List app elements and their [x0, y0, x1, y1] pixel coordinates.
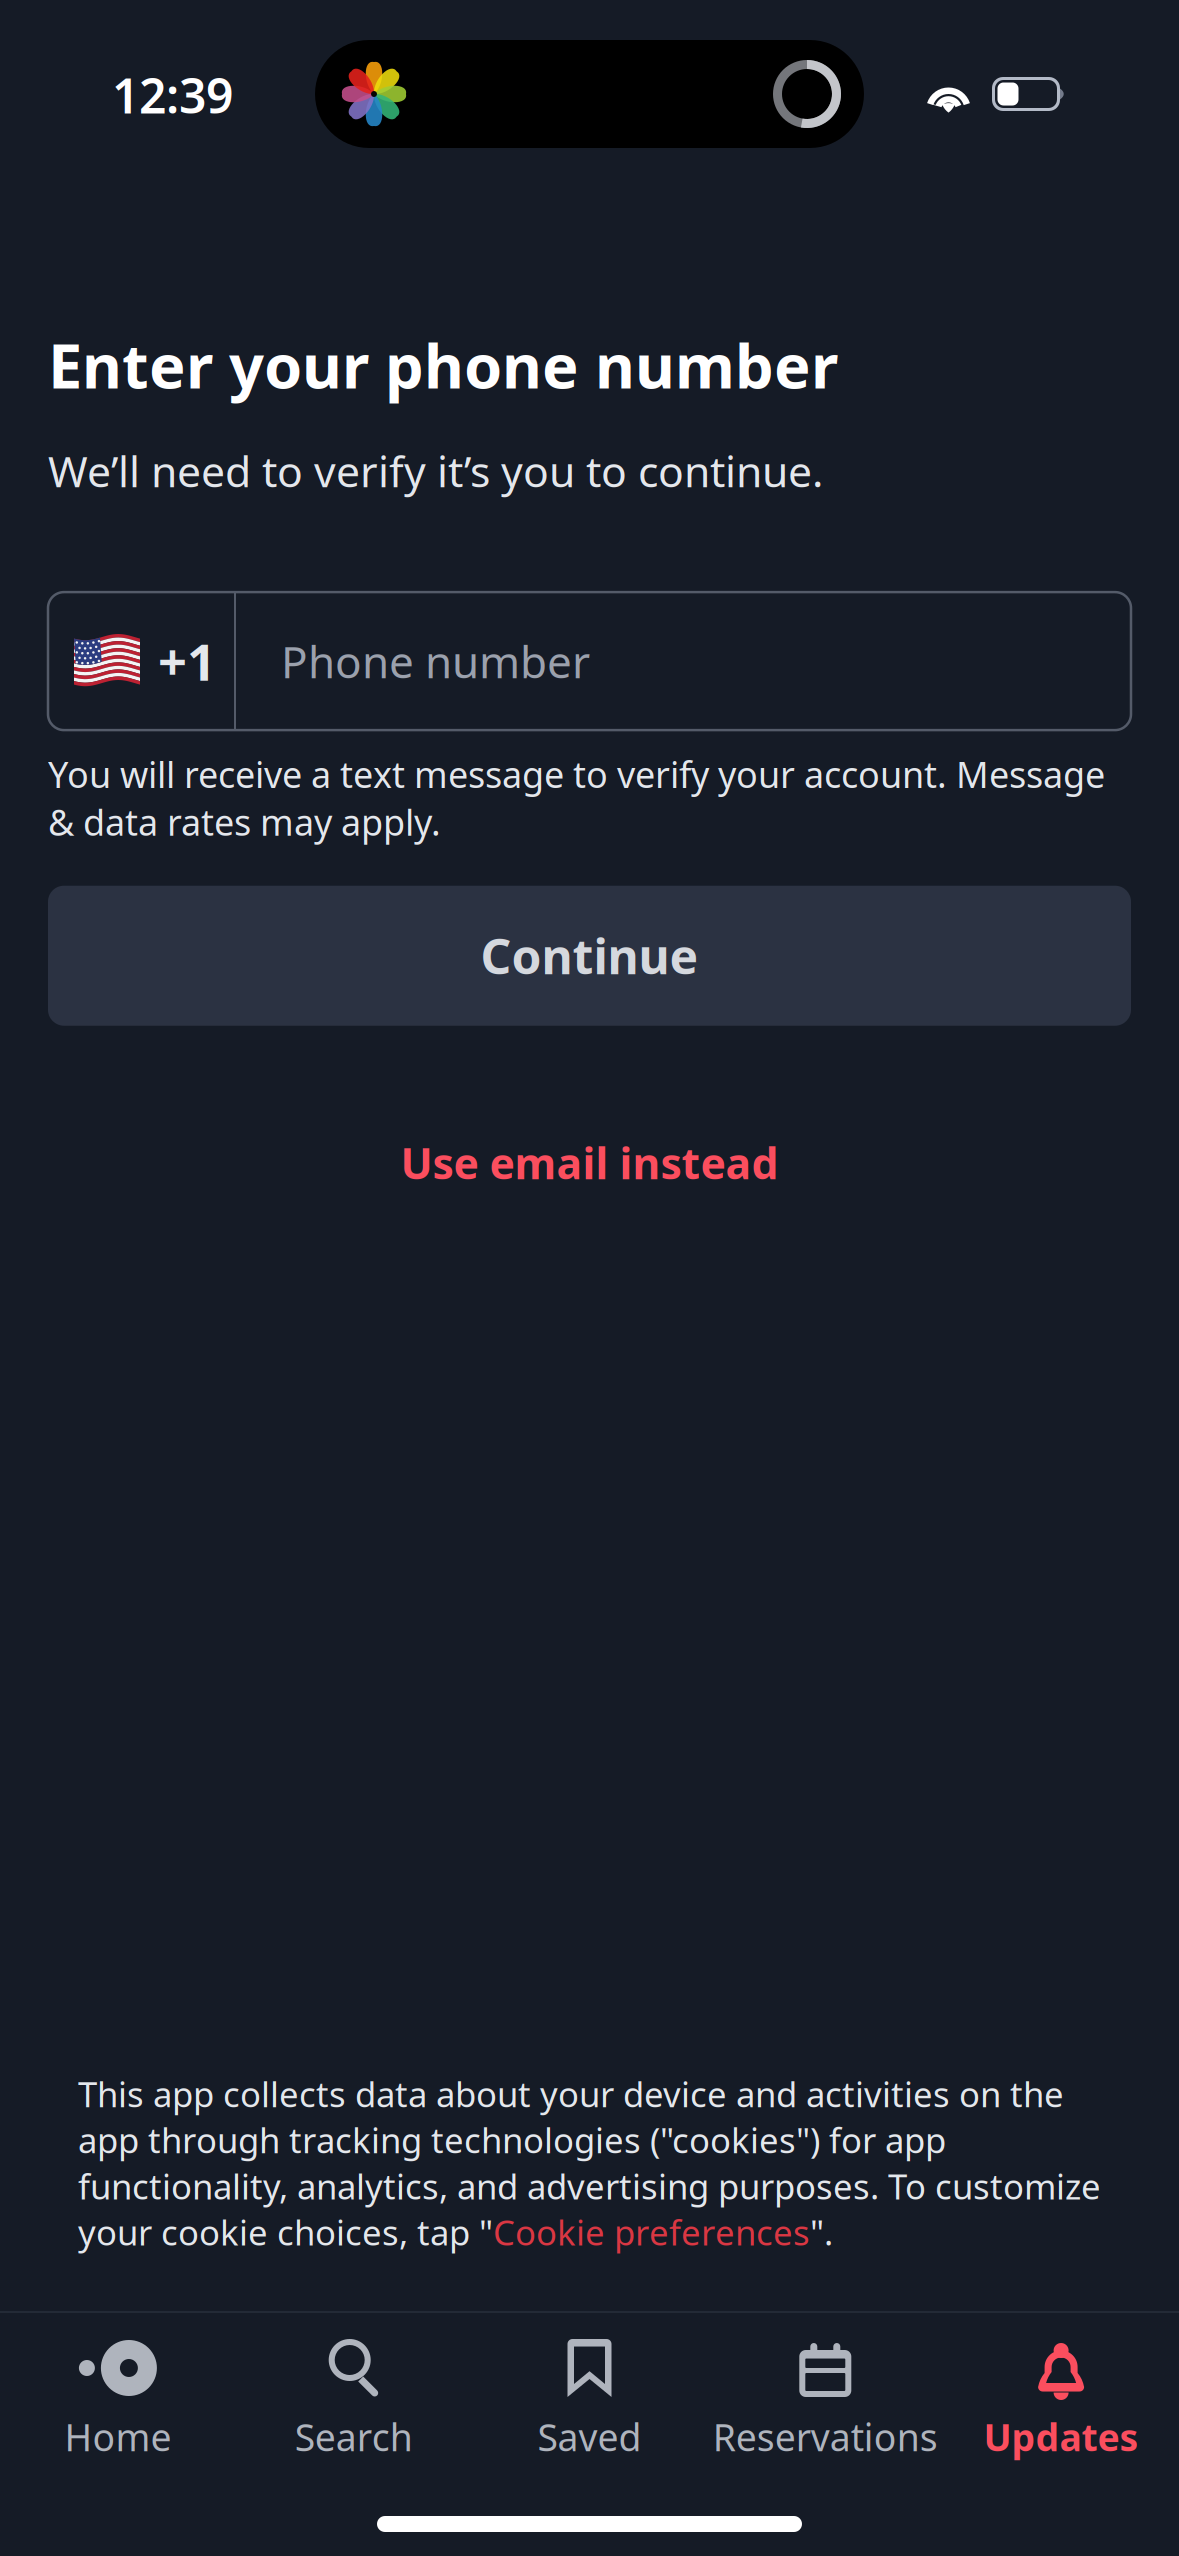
- button[interactable]: Use email instead: [48, 1118, 1131, 1208]
- staticText: +1: [158, 627, 216, 695]
- staticText: Search: [295, 2412, 413, 2462]
- staticText: Continue: [480, 924, 698, 988]
- staticText: Home: [64, 2412, 171, 2462]
- staticText: Use email instead: [400, 1134, 778, 1191]
- staticText: Reservations: [713, 2412, 938, 2462]
- staticText: Enter your phone number: [48, 324, 838, 405]
- staticText: 12:39: [112, 63, 233, 127]
- button[interactable]: Search: [236, 2313, 472, 2472]
- button[interactable]: +1: [48, 592, 234, 730]
- staticText: This app collects data about your device…: [78, 2071, 1101, 2255]
- button[interactable]: Updates: [943, 2313, 1179, 2472]
- staticText: Saved: [537, 2412, 641, 2462]
- button[interactable]: Home: [0, 2313, 236, 2472]
- staticText: Updates: [984, 2412, 1139, 2462]
- staticText: You will receive a text message to verif…: [48, 750, 1105, 846]
- staticText: Phone number: [281, 632, 590, 690]
- staticText: We’ll need to verify it’s you to continu…: [48, 442, 823, 499]
- button[interactable]: Reservations: [707, 2313, 943, 2472]
- button[interactable]: Saved: [472, 2313, 707, 2472]
- button[interactable]: Continue: [48, 886, 1131, 1026]
